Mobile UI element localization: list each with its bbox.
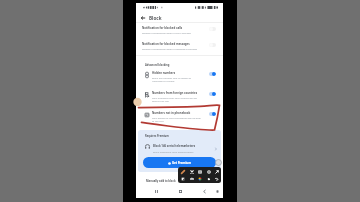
button[interactable]: Back [200, 187, 208, 195]
button[interactable]: Numbers not in phonebook [136, 109, 223, 127]
button[interactable]: Home [176, 187, 184, 195]
staticText: Requires Premium [145, 134, 169, 138]
staticText: Notification for blocked calls [142, 26, 183, 30]
button[interactable]: Markup tool 2 [196, 168, 203, 175]
button[interactable]: Toggle [209, 112, 216, 116]
button[interactable]: Get Premium [143, 157, 216, 168]
staticText: Block [149, 15, 162, 21]
staticText: Only people in your phonebook will be ab… [152, 116, 201, 122]
button[interactable]: Markup tool 5 [179, 175, 186, 182]
button[interactable]: Back [140, 15, 146, 21]
button[interactable]: Markup tool 6 [188, 175, 195, 182]
staticText: Notification for blocked messages [142, 42, 190, 46]
staticText: Hidden numbers [152, 71, 176, 75]
button[interactable]: Toggle [209, 43, 216, 47]
staticText: Block 146 serial telemarketers [153, 144, 196, 148]
button[interactable]: Markup tool 8 [205, 175, 212, 182]
staticText: Numbers not in phonebook [152, 111, 191, 115]
button[interactable]: Hidden numbers [136, 69, 223, 87]
button[interactable]: Markup tool 9 [213, 175, 220, 182]
button[interactable]: Recents [152, 187, 160, 195]
staticText: Block any number that is shown as Unknow… [152, 76, 191, 82]
button[interactable]: Markup tool 7 [196, 175, 203, 182]
button[interactable]: Notification for blocked messages [136, 40, 223, 54]
staticText: Only numbers from your country will be a… [152, 96, 197, 102]
button[interactable]: Toggle [209, 72, 216, 76]
button[interactable]: Markup tool 4 [213, 168, 220, 175]
staticText: Numbers from foreign countries [152, 91, 198, 95]
button[interactable]: Numbers from foreign countries [136, 89, 223, 107]
staticText: Manually add to block [146, 179, 176, 183]
staticText: Get Premium [172, 161, 191, 165]
staticText: Advanced blocking [145, 63, 170, 67]
button[interactable]: Markup tool 1 [188, 168, 195, 175]
staticText: Receive a notification when a call is bl… [142, 31, 191, 34]
button[interactable]: Toggle [209, 92, 216, 96]
button[interactable]: Block 146 serial telemarketers [138, 142, 221, 155]
button[interactable]: Markup tool 0 [179, 168, 186, 175]
button[interactable]: Markup tool 3 [205, 168, 212, 175]
staticText: Block registered robo telemarketers [153, 150, 194, 153]
button[interactable]: Assistant [213, 187, 221, 195]
staticText: Receive a notification when a message is… [142, 47, 198, 50]
button[interactable]: Toggle [209, 27, 216, 31]
button[interactable]: Notification for blocked calls [136, 24, 223, 38]
